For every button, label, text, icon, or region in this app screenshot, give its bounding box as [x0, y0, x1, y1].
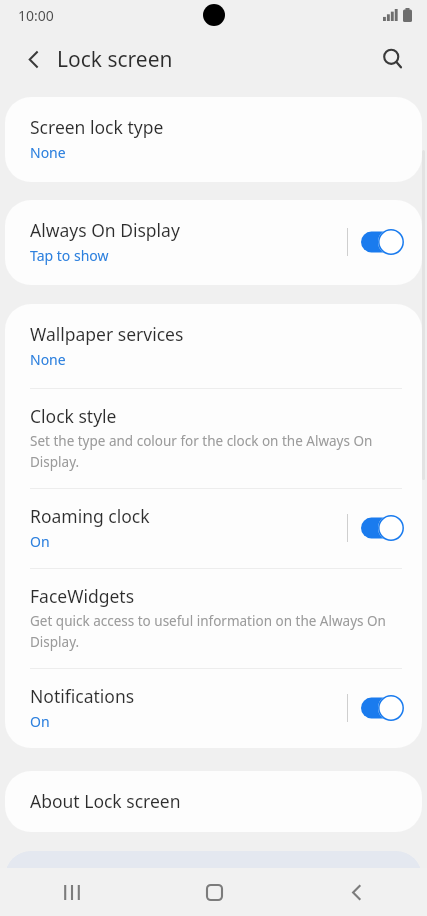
staticText: Wallpaper services [30, 322, 184, 346]
staticText: Screen lock type [30, 115, 164, 139]
button[interactable]: FaceWidgets [5, 569, 422, 668]
button[interactable]: Toggle [361, 515, 404, 541]
button[interactable]: Screen lock type [5, 97, 422, 182]
button[interactable]: Clock style [5, 389, 422, 488]
button[interactable]: Recent apps [0, 868, 143, 916]
button[interactable]: Notifications [5, 669, 422, 748]
button[interactable]: Back [285, 868, 427, 916]
button[interactable]: Always On Display [5, 200, 422, 285]
staticText: Notifications [30, 684, 135, 708]
staticText: Looking for something else? [25, 872, 257, 896]
staticText: About Lock screen [30, 789, 181, 813]
button[interactable]: Search [373, 39, 413, 79]
staticText: Roaming clock [30, 504, 150, 528]
button[interactable]: Toggle [361, 695, 404, 721]
button[interactable]: Wallpaper services [5, 304, 422, 388]
staticText: Lock screen [57, 45, 173, 74]
button[interactable]: Roaming clock [5, 489, 422, 568]
staticText: None [30, 143, 66, 162]
button[interactable]: Navigate up [13, 39, 53, 79]
staticText: On [30, 532, 50, 551]
staticText: Always On Display [30, 218, 180, 242]
staticText: FaceWidgets [30, 584, 135, 608]
button[interactable]: About Lock screen [5, 771, 422, 832]
button[interactable]: Home [143, 868, 285, 916]
staticText: Tap to show [30, 246, 109, 265]
button[interactable]: Toggle [361, 229, 404, 255]
staticText: None [30, 350, 66, 369]
staticText: Clock style [30, 404, 117, 428]
staticText: On [30, 712, 50, 731]
staticText: Get quick access to useful information o… [30, 612, 392, 651]
staticText: 10:00 [18, 6, 54, 25]
staticText: Set the type and colour for the clock on… [30, 432, 392, 471]
